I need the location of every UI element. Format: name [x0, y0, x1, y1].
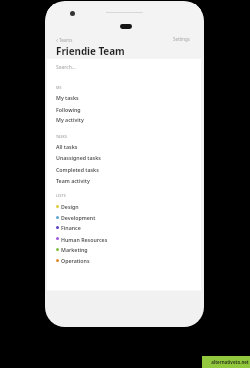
staticText: Friendie Team	[56, 44, 125, 57]
button[interactable]	[47, 255, 201, 266]
button[interactable]	[47, 103, 201, 114]
staticText: Completed tasks	[56, 166, 99, 173]
other: alternativeto.net	[202, 356, 250, 368]
staticText: Search...	[56, 64, 76, 71]
staticText: ME	[56, 85, 62, 90]
staticText: Following	[56, 106, 81, 113]
staticText: TASKS	[56, 134, 68, 139]
button[interactable]	[47, 163, 201, 174]
button[interactable]	[47, 141, 201, 152]
button[interactable]: Teams	[56, 37, 73, 43]
button[interactable]	[47, 233, 201, 244]
button[interactable]	[47, 61, 201, 74]
button[interactable]	[47, 222, 201, 233]
staticText: Development	[61, 214, 96, 221]
staticText: My activity	[56, 116, 84, 123]
staticText: Teams	[59, 37, 73, 43]
staticText: Design	[61, 203, 79, 210]
staticText: Team activity	[56, 177, 90, 184]
staticText: Finance	[61, 224, 81, 231]
button[interactable]	[47, 174, 201, 185]
staticText: Unassigned tasks	[56, 154, 101, 161]
button[interactable]	[47, 201, 201, 212]
button[interactable]: Settings	[173, 36, 201, 42]
button[interactable]	[47, 114, 201, 125]
staticText: Operations	[61, 257, 90, 264]
staticText: All tasks	[56, 143, 78, 150]
button[interactable]	[47, 212, 201, 223]
button[interactable]	[47, 92, 201, 103]
staticText: Marketing	[61, 246, 88, 253]
staticText: My tasks	[56, 94, 79, 101]
staticText: Human Resources	[61, 236, 108, 243]
staticText: alternativeto.net	[211, 359, 249, 365]
staticText: LISTS	[56, 193, 66, 198]
button[interactable]	[47, 152, 201, 163]
staticText: Settings	[173, 36, 190, 42]
button[interactable]	[47, 244, 201, 255]
